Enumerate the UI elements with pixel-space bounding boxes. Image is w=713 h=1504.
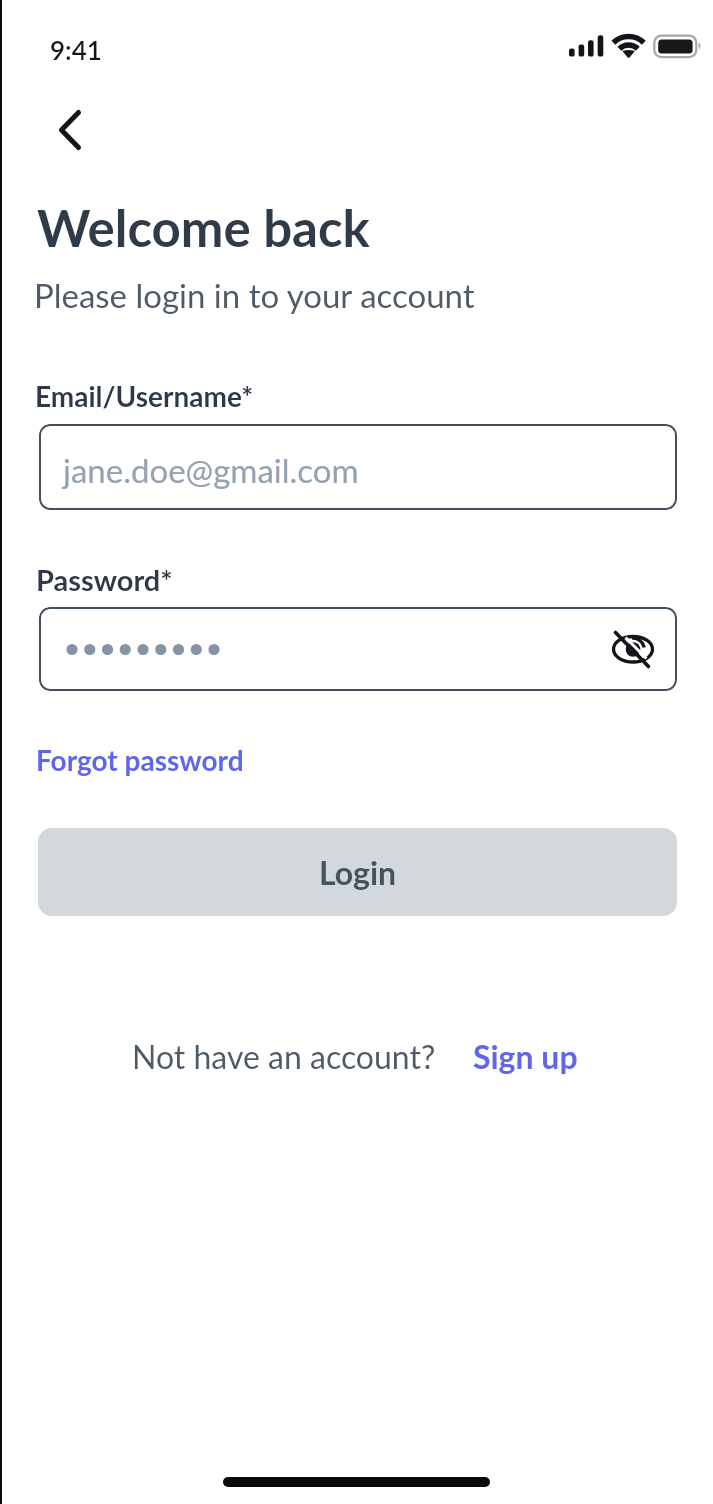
button[interactable] <box>39 607 677 691</box>
staticText: 9:41 <box>50 34 102 65</box>
staticText: Email/Username* <box>35 379 254 413</box>
button[interactable] <box>46 106 94 154</box>
staticText: Please login in to your account <box>34 275 475 315</box>
staticText: Password* <box>36 562 173 597</box>
staticText: Welcome back <box>37 197 370 258</box>
button[interactable]: Forgot password <box>36 736 244 770</box>
staticText: Forgot password <box>36 743 244 777</box>
staticText: jane.doe@gmail.com <box>63 450 359 490</box>
staticText: Not have an account? <box>132 1037 436 1075</box>
button[interactable] <box>608 624 658 674</box>
button[interactable]: jane.doe@gmail.com <box>39 424 677 510</box>
button[interactable]: Sign up <box>473 1030 578 1068</box>
staticText: Sign up <box>473 1037 578 1075</box>
button[interactable]: Login <box>38 828 677 916</box>
staticText: Login <box>319 853 397 891</box>
